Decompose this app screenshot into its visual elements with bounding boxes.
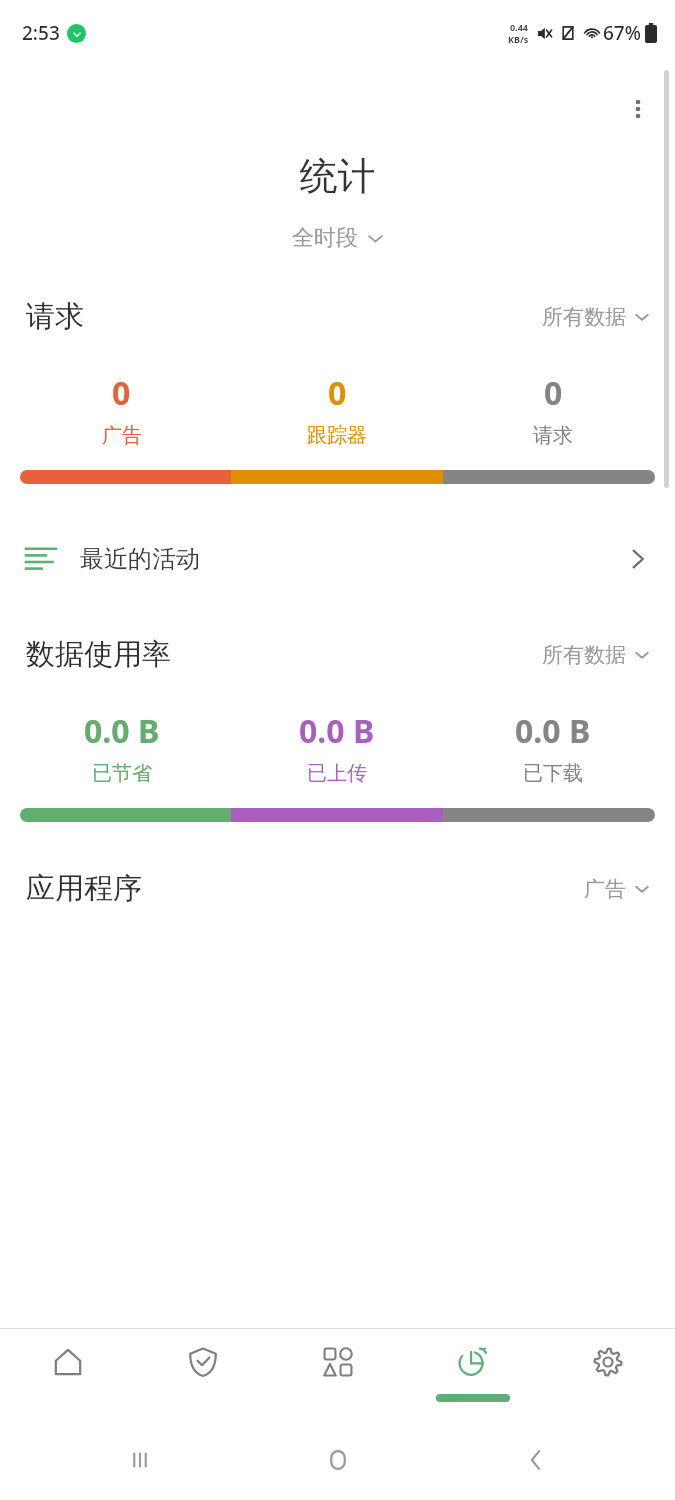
button[interactable]: 0.0 B <box>229 709 445 786</box>
staticText: 0 <box>112 371 131 415</box>
staticText: 请求 <box>533 423 573 448</box>
staticText: 应用程序 <box>26 870 142 907</box>
staticText: 已上传 <box>307 761 367 786</box>
staticText: KB/s <box>508 33 529 45</box>
staticText: 0.44 <box>510 21 528 33</box>
staticText: 0.0 B <box>299 709 375 753</box>
staticText: 统计 <box>0 152 675 200</box>
staticText: 所有数据 <box>542 642 626 668</box>
staticText: 0 <box>328 371 347 415</box>
button[interactable]: 全时段 <box>0 224 675 252</box>
staticText: 请求 <box>26 298 84 335</box>
button[interactable]: Protection <box>135 1328 270 1420</box>
button[interactable]: 0.0 B <box>445 709 661 786</box>
button[interactable]: 所有数据 <box>542 642 649 668</box>
button[interactable]: Back <box>437 1420 635 1500</box>
button[interactable]: Settings <box>540 1328 675 1420</box>
button[interactable]: 广告 <box>584 876 649 902</box>
staticText: 0 <box>544 371 563 415</box>
staticText: 已节省 <box>92 761 152 786</box>
button[interactable]: More options <box>615 86 661 132</box>
staticText: 数据使用率 <box>26 636 171 673</box>
button[interactable]: 0 <box>14 371 229 448</box>
staticText: 最近的活动 <box>80 544 200 574</box>
staticText: 广告 <box>102 423 142 448</box>
staticText: 0.0 B <box>515 709 591 753</box>
staticText: 跟踪器 <box>307 423 367 448</box>
staticText: 广告 <box>584 876 626 902</box>
button[interactable]: 所有数据 <box>542 304 649 330</box>
staticText: 0.0 B <box>84 709 160 753</box>
button[interactable]: 0 <box>445 371 661 448</box>
button[interactable]: Home <box>239 1420 437 1500</box>
staticText: 2:53 <box>22 20 60 46</box>
button[interactable]: 0 <box>229 371 445 448</box>
staticText: 67% <box>603 20 641 46</box>
button[interactable]: 最近的活动 <box>0 528 675 590</box>
button[interactable]: Recents <box>40 1420 239 1500</box>
button[interactable]: Statistics <box>405 1328 540 1420</box>
button[interactable]: Apps <box>270 1328 405 1420</box>
button[interactable]: 0.0 B <box>14 709 229 786</box>
button[interactable]: Home <box>0 1328 135 1420</box>
staticText: 全时段 <box>292 224 358 252</box>
staticText: 已下载 <box>523 761 583 786</box>
staticText: 所有数据 <box>542 304 626 330</box>
